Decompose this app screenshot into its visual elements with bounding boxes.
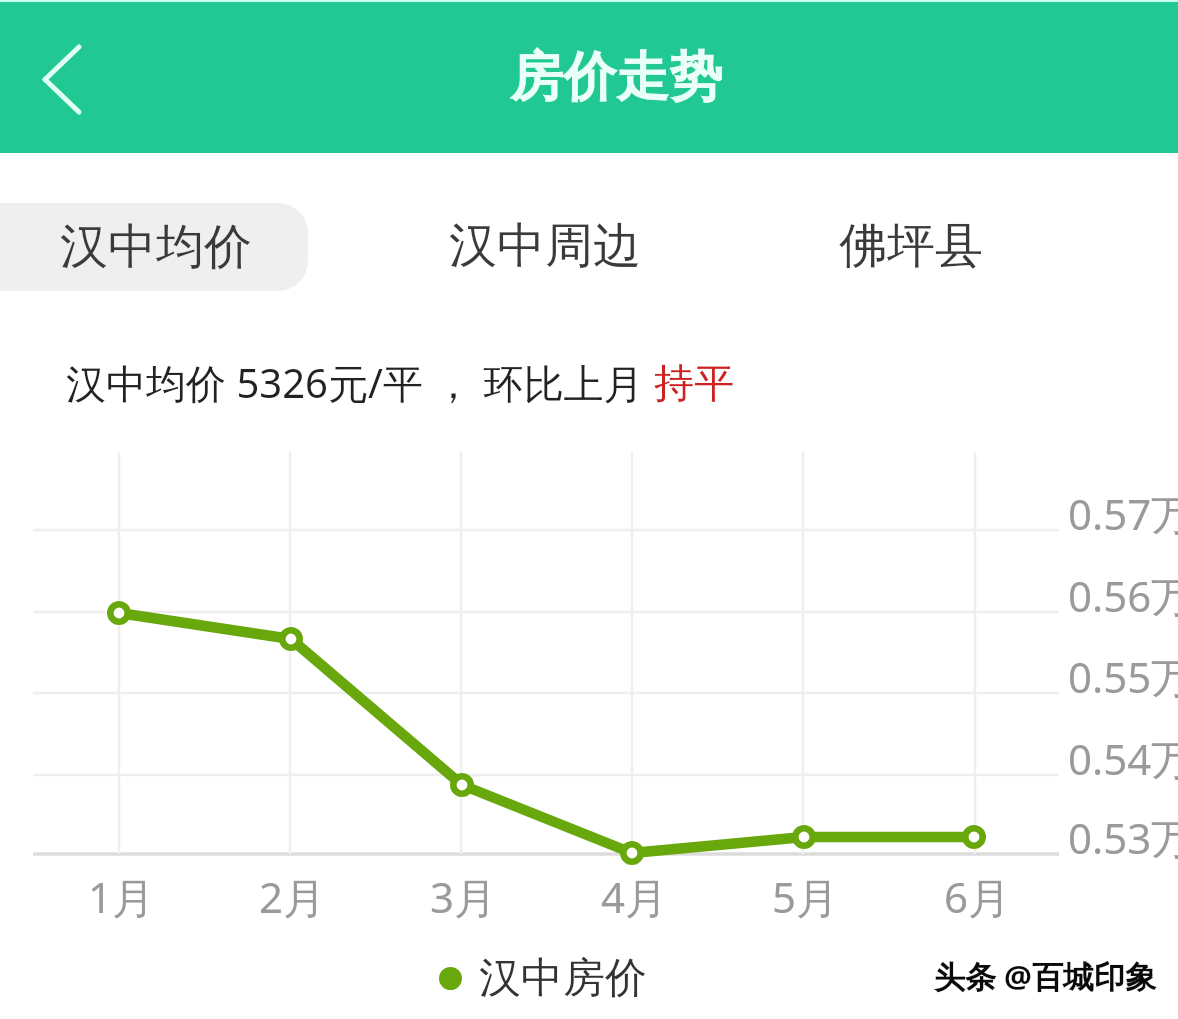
staticText: 佛坪县 [839,216,983,276]
button[interactable]: 佛坪县 [749,202,1122,290]
staticText: 5月 [772,868,839,925]
button[interactable]: 汉中均价 [0,203,308,291]
staticText: 头条 @百城印象 [934,955,1156,997]
staticText: 3月 [430,868,497,925]
staticText: 6月 [944,868,1011,925]
staticText: 汉中均价 [60,217,252,277]
staticText: 1月 [88,868,155,925]
staticText: 4月 [601,868,668,925]
staticText: 0.53万 [1068,809,1178,866]
staticText: 持平 [654,358,734,408]
staticText: 汉中均价 5326元/平 ， 环比上月 [66,355,654,410]
staticText: 0.55万 [1068,648,1178,705]
staticText: 0.56万 [1068,567,1178,624]
staticText: 房价走势 [510,44,722,111]
staticText: 2月 [259,868,326,925]
staticText: 0.54万 [1068,730,1178,787]
button[interactable]: Back [22,39,102,119]
button[interactable]: 汉中周边 [358,202,731,290]
staticText: 汉中周边 [449,216,641,276]
staticText: 0.57万 [1068,485,1178,542]
staticText: 汉中房价 [479,952,647,1005]
